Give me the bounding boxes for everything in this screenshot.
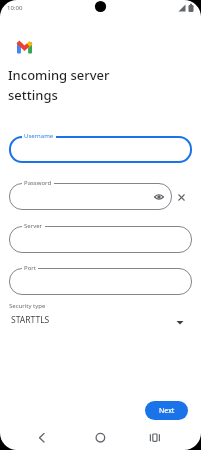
staticText: Password xyxy=(24,179,52,187)
staticText: STARTTLS xyxy=(11,314,50,326)
staticText: Next xyxy=(159,406,175,416)
button[interactable] xyxy=(178,194,185,201)
button[interactable]: Next xyxy=(145,401,188,420)
staticText: Server xyxy=(24,222,43,230)
button[interactable] xyxy=(9,183,172,210)
button[interactable]: STARTTLS xyxy=(9,313,192,331)
button[interactable] xyxy=(141,428,181,450)
button[interactable] xyxy=(9,136,192,163)
button[interactable] xyxy=(81,428,121,450)
staticText: Security type xyxy=(9,302,46,310)
staticText: 10:00 xyxy=(7,4,23,12)
button[interactable] xyxy=(9,268,192,295)
staticText: Username xyxy=(24,132,54,140)
button[interactable] xyxy=(20,428,60,450)
staticText: Port xyxy=(24,264,36,272)
staticText: Incoming server settings xyxy=(8,66,110,104)
button[interactable] xyxy=(9,226,192,253)
